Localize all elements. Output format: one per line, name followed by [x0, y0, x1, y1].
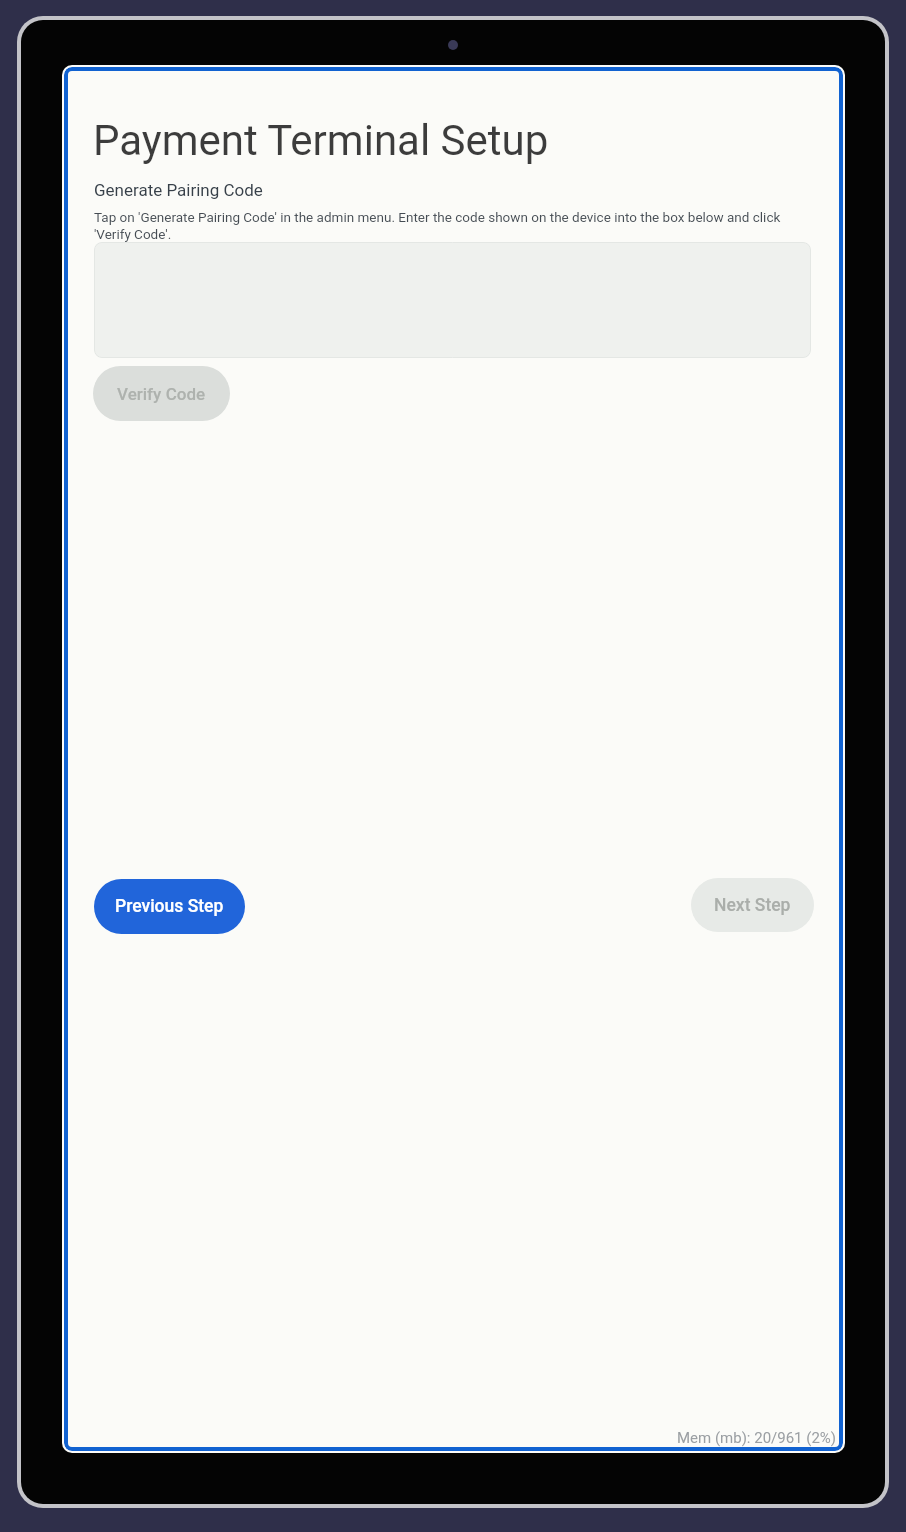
staticText: Generate Pairing Code [94, 180, 263, 200]
staticText: 'Verify Code'. [94, 226, 172, 242]
button[interactable]: Previous Step [94, 879, 245, 934]
button[interactable]: Next Step [691, 878, 814, 932]
staticText: Previous Step [115, 896, 224, 917]
staticText: Payment Terminal Setup [93, 116, 549, 165]
staticText: Verify Code [117, 384, 206, 404]
staticText: Next Step [714, 895, 791, 916]
button[interactable]: Verify Code [93, 366, 230, 421]
staticText: Tap on 'Generate Pairing Code' in the ad… [94, 209, 781, 225]
staticText: Mem (mb): 20/961 (2%) [677, 1429, 837, 1447]
